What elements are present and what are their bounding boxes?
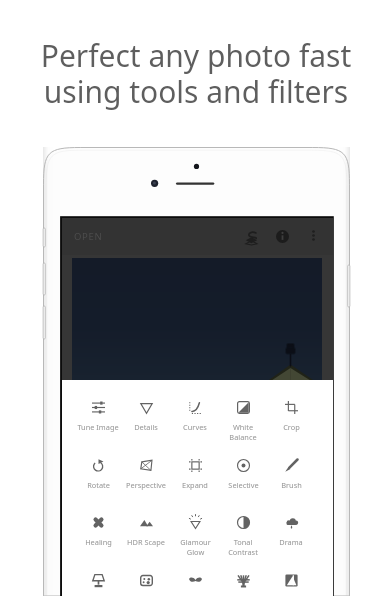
staticText: Perspective xyxy=(126,480,166,490)
button[interactable]: HDR Scape xyxy=(122,510,170,568)
staticText: Glamour Glow xyxy=(180,537,211,557)
staticText: HDR Scape xyxy=(127,537,165,547)
staticText: Tune Image xyxy=(77,422,119,432)
button[interactable]: Details xyxy=(122,395,170,453)
button[interactable]: Brush xyxy=(267,453,315,511)
staticText: Drama xyxy=(279,537,303,547)
button[interactable]: Crop xyxy=(267,395,315,453)
staticText: Details xyxy=(134,422,158,432)
button[interactable]: Info xyxy=(270,224,295,249)
staticText: Expand xyxy=(182,480,208,490)
staticText: Curves xyxy=(183,422,207,432)
button[interactable]: Expand xyxy=(171,453,219,511)
staticText: Selective xyxy=(228,480,259,490)
button[interactable]: Perspective xyxy=(122,453,170,511)
button[interactable]: Glamour Glow xyxy=(171,510,219,568)
button[interactable]: Curves xyxy=(171,395,219,453)
staticText: White Balance xyxy=(229,422,257,442)
button[interactable]: Grunge xyxy=(219,568,267,596)
button[interactable]: Rotate xyxy=(74,453,122,511)
staticText: Brush xyxy=(281,480,302,490)
button[interactable]: White Balance xyxy=(219,395,267,453)
staticText: Tonal Contrast xyxy=(228,537,258,557)
staticText: Healing xyxy=(85,537,112,547)
staticText: Crop xyxy=(283,422,300,432)
button[interactable]: Drama xyxy=(267,510,315,568)
button[interactable]: Vintage xyxy=(74,568,122,596)
button[interactable]: Grainy Film xyxy=(122,568,170,596)
button[interactable]: Tonal Contrast xyxy=(219,510,267,568)
button[interactable]: Frames xyxy=(267,568,315,596)
button[interactable]: Retrolux xyxy=(171,568,219,596)
staticText: OPEN xyxy=(74,230,103,243)
button[interactable]: More options xyxy=(302,224,324,246)
staticText: using tools and filters xyxy=(0,71,392,112)
button[interactable]: Healing xyxy=(74,510,122,568)
button[interactable]: Selective xyxy=(219,453,267,511)
staticText: Perfect any photo fast xyxy=(0,35,392,76)
button[interactable]: Tune Image xyxy=(74,395,122,453)
button[interactable]: Compare xyxy=(238,224,265,251)
staticText: Rotate xyxy=(87,480,110,490)
